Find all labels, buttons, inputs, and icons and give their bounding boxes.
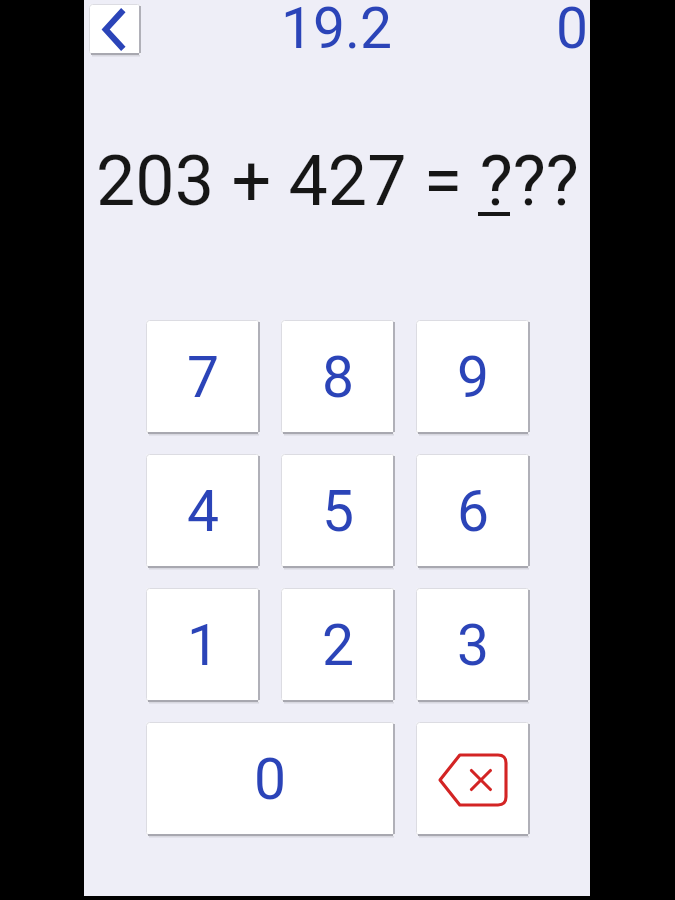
staticText: 3 bbox=[457, 612, 490, 679]
staticText: 0 bbox=[556, 0, 589, 57]
staticText: 2 bbox=[322, 612, 355, 679]
button[interactable]: 5 bbox=[281, 454, 395, 568]
button[interactable]: 9 bbox=[416, 320, 530, 434]
button[interactable]: 0 bbox=[146, 722, 395, 836]
staticText: 9 bbox=[457, 344, 490, 411]
staticText: 7 bbox=[187, 344, 220, 411]
staticText: 19.2 bbox=[281, 0, 393, 57]
staticText: 203 + 427 = ??? bbox=[96, 140, 579, 212]
staticText: 0 bbox=[254, 746, 287, 813]
staticText: 1 bbox=[187, 612, 220, 679]
staticText: 5 bbox=[322, 478, 355, 545]
button[interactable]: 8 bbox=[281, 320, 395, 434]
staticText: 4 bbox=[187, 478, 220, 545]
button[interactable]: 1 bbox=[146, 588, 260, 702]
button[interactable]: 4 bbox=[146, 454, 260, 568]
button[interactable]: 7 bbox=[146, 320, 260, 434]
button[interactable]: 2 bbox=[281, 588, 395, 702]
button[interactable] bbox=[416, 722, 530, 836]
button[interactable]: 6 bbox=[416, 454, 530, 568]
button[interactable] bbox=[89, 4, 141, 55]
staticText: 8 bbox=[322, 344, 355, 411]
button[interactable]: 3 bbox=[416, 588, 530, 702]
staticText: 6 bbox=[457, 478, 490, 545]
